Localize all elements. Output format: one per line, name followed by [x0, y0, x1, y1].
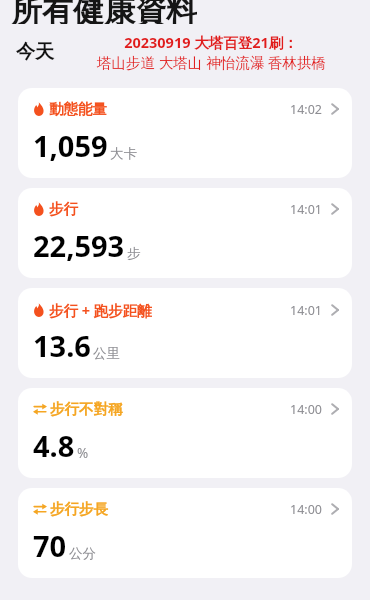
- button[interactable]: 步行 + 跑步距離: [18, 288, 352, 378]
- staticText: 公里: [93, 345, 120, 362]
- button[interactable]: 動態能量: [18, 88, 352, 178]
- button[interactable]: 步行不對稱: [18, 388, 352, 478]
- staticText: 1,059: [33, 126, 108, 165]
- staticText: 22,593: [33, 226, 125, 265]
- staticText: 今天: [16, 40, 54, 64]
- staticText: 13.6: [33, 326, 91, 365]
- staticText: 70: [33, 526, 67, 565]
- staticText: 大卡: [110, 145, 137, 162]
- staticText: 塔山步道 大塔山 神怡流瀑 香林拱橋: [97, 52, 326, 72]
- staticText: 步行不對稱: [50, 400, 123, 418]
- staticText: 步行步長: [50, 500, 108, 518]
- staticText: 14:01: [290, 201, 322, 218]
- staticText: 14:00: [290, 501, 322, 518]
- staticText: 步行: [49, 200, 78, 218]
- button[interactable]: 步行: [18, 188, 352, 278]
- staticText: 14:00: [290, 401, 322, 418]
- staticText: 14:01: [290, 302, 322, 319]
- staticText: 公分: [69, 545, 96, 562]
- staticText: 動態能量: [49, 100, 107, 118]
- staticText: 步: [127, 245, 141, 262]
- staticText: 所有健康資料: [11, 0, 197, 24]
- staticText: %: [77, 444, 89, 462]
- staticText: 4.8: [33, 426, 75, 465]
- staticText: 14:02: [290, 101, 322, 118]
- staticText: 步行 + 跑步距離: [49, 300, 152, 320]
- staticText: 20230919 大塔百登21刷：: [124, 32, 298, 52]
- button[interactable]: 步行步長: [18, 488, 352, 578]
